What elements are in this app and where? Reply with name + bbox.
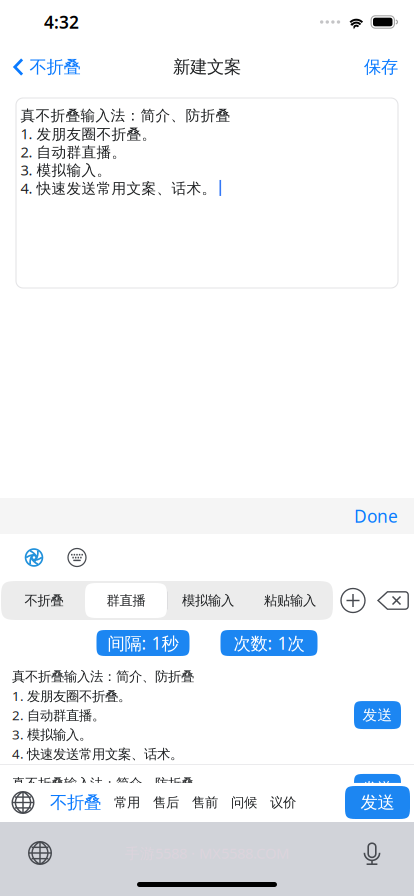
staticText: 模拟输入: [182, 592, 234, 609]
button[interactable]: 发送: [345, 786, 410, 819]
button[interactable]: Delete: [377, 591, 409, 610]
staticText: 3. 模拟输入。: [20, 160, 111, 180]
staticText: 保存: [364, 56, 398, 78]
staticText: 不折叠: [50, 792, 101, 813]
button[interactable]: Keyboard mode: [61, 541, 93, 573]
button[interactable]: Switch keyboard: [8, 787, 38, 817]
button[interactable]: 常用: [114, 794, 140, 811]
staticText: 不折叠: [29, 56, 80, 78]
staticText: 发送: [362, 779, 392, 797]
staticText: 真不折叠输入法：简介、防折叠: [20, 106, 230, 124]
staticText: Done: [354, 504, 398, 527]
staticText: 2. 自动群直播。: [20, 142, 126, 161]
staticText: 常用: [114, 794, 140, 811]
button[interactable]: 模拟输入: [167, 583, 249, 618]
staticText: 真不折叠输入法：简介、防折叠: [12, 668, 194, 685]
button[interactable]: Done: [338, 498, 414, 534]
staticText: 新建文案: [173, 56, 241, 78]
staticText: 议价: [270, 794, 296, 811]
staticText: 4:32: [44, 10, 79, 33]
button[interactable]: Aperture mode: [18, 541, 50, 573]
staticText: 售前: [192, 794, 218, 811]
staticText: 真不折叠输入法：简介、防折叠: [12, 775, 194, 792]
staticText: 3. 模拟输入。: [12, 725, 92, 743]
button[interactable]: 不折叠: [3, 583, 85, 618]
staticText: 发送: [362, 706, 392, 724]
button[interactable]: 真不折叠输入法：简介、防折叠: [0, 666, 414, 764]
staticText: 4. 快速发送常用文案、话术。: [20, 178, 216, 198]
button[interactable]: 粘贴输入: [249, 583, 331, 618]
button[interactable]: 不折叠: [0, 45, 90, 89]
button[interactable]: 不折叠: [50, 792, 101, 813]
staticText: 1. 发朋友圈不折叠。: [20, 124, 156, 143]
button[interactable]: 售后: [153, 794, 179, 811]
staticText: 售后: [153, 794, 179, 811]
button[interactable]: 群直播: [85, 583, 167, 618]
button[interactable]: 问候: [231, 794, 257, 811]
button[interactable]: 次数: 1次: [220, 630, 317, 656]
staticText: 2. 自动群直播。: [12, 706, 105, 724]
staticText: 4. 快速发送常用文案、话术。: [12, 745, 183, 762]
button[interactable]: 间隔: 1秒: [96, 630, 189, 656]
staticText: 不折叠: [24, 592, 63, 609]
staticText: 问候: [231, 794, 257, 811]
staticText: 发送: [360, 792, 394, 813]
button[interactable]: 售前: [192, 794, 218, 811]
staticText: 群直播: [106, 592, 145, 609]
button[interactable]: Globe: [23, 836, 57, 870]
staticText: 次数: 1次: [233, 631, 304, 654]
staticText: 手游5588 · MX5588.COM: [125, 843, 289, 863]
button[interactable]: 议价: [270, 794, 296, 811]
staticText: 粘贴输入: [264, 592, 316, 609]
staticText: 间隔: 1秒: [107, 631, 178, 654]
staticText: 1. 发朋友圈不折叠。: [12, 687, 131, 705]
button[interactable]: 保存: [354, 45, 414, 89]
button[interactable]: Dictation: [355, 836, 389, 870]
button[interactable]: Add phrase: [341, 588, 365, 612]
